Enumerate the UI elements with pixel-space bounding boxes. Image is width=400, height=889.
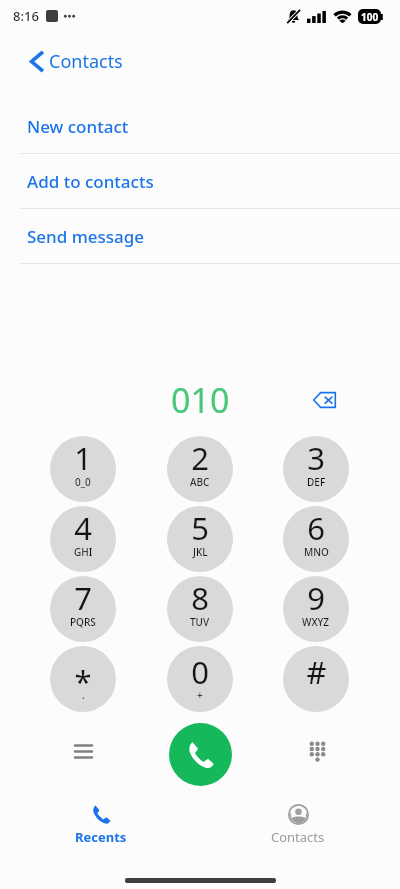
button[interactable]: 5 (167, 506, 233, 572)
button[interactable]: 4 (50, 506, 116, 572)
button[interactable]: * (50, 646, 116, 712)
button[interactable]: Add to contacts (0, 154, 400, 209)
button[interactable]: 0 (167, 646, 233, 712)
button[interactable]: New contact (0, 99, 400, 154)
button[interactable]: # (283, 646, 349, 712)
staticText: 9 (307, 577, 325, 619)
staticText: . (82, 688, 85, 702)
button[interactable]: Call (169, 723, 232, 786)
staticText: + (197, 688, 203, 702)
staticText: GHI (74, 545, 93, 559)
button[interactable]: Contacts (0, 44, 400, 78)
staticText: 2 (191, 437, 209, 479)
button[interactable]: Send message (0, 209, 400, 264)
staticText: 1 (74, 437, 92, 479)
button[interactable]: 2 (167, 436, 233, 502)
staticText: JKL (193, 545, 208, 559)
staticText: DEF (307, 475, 326, 489)
staticText: WXYZ (302, 615, 330, 629)
button[interactable]: 1 (50, 436, 116, 502)
staticText: Contacts (271, 828, 325, 846)
staticText: Recents (75, 828, 127, 846)
staticText: Add to contacts (27, 170, 154, 193)
staticText: Contacts (49, 49, 123, 74)
staticText: New contact (27, 115, 129, 138)
staticText: 0 (191, 651, 209, 693)
staticText: # (306, 651, 327, 693)
staticText: Send message (27, 225, 145, 248)
staticText: 4 (74, 507, 92, 549)
button[interactable]: 9 (283, 576, 349, 642)
staticText: * (74, 660, 92, 702)
staticText: 100 (361, 10, 379, 24)
staticText: 6 (307, 507, 325, 549)
staticText: MNO (304, 545, 329, 559)
staticText: 5 (191, 507, 209, 549)
button[interactable]: Call log options (63, 734, 103, 774)
staticText: PQRS (70, 615, 96, 629)
staticText: 0_0 (75, 475, 91, 489)
staticText: ABC (190, 475, 210, 489)
button[interactable]: Backspace (306, 381, 343, 418)
staticText: 8 (191, 577, 209, 619)
button[interactable]: Contacts (253, 800, 343, 848)
staticText: TUV (190, 615, 210, 629)
button[interactable]: 7 (50, 576, 116, 642)
staticText: 3 (307, 437, 325, 479)
button[interactable]: 6 (283, 506, 349, 572)
button[interactable]: 3 (283, 436, 349, 502)
button[interactable]: 8 (167, 576, 233, 642)
staticText: 8:16 (13, 7, 39, 25)
staticText: 7 (74, 577, 92, 619)
button[interactable]: Recents (56, 800, 146, 848)
staticText: 010 (171, 377, 230, 421)
button[interactable]: Dialpad (297, 734, 337, 774)
